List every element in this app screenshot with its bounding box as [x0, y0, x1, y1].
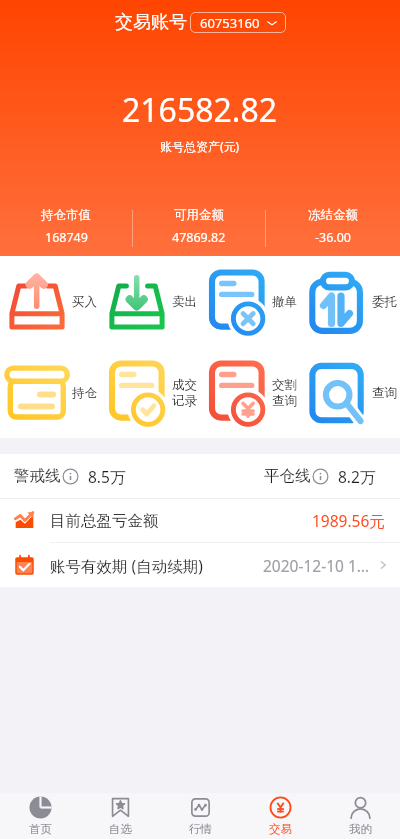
- staticText: 警戒线: [14, 466, 61, 486]
- button[interactable]: 卖出: [100, 256, 200, 347]
- button[interactable]: 账号有效期 (自动续期): [0, 543, 400, 587]
- button[interactable]: 行情: [160, 793, 240, 839]
- staticText: -36.00: [315, 229, 351, 246]
- staticText: 8.2万: [338, 466, 376, 487]
- button[interactable]: 成交 记录: [100, 347, 200, 438]
- button[interactable]: 警戒线: [14, 454, 200, 498]
- staticText: 首页: [29, 822, 52, 836]
- staticText: 冻结金额: [308, 207, 358, 223]
- staticText: 平仓线: [264, 466, 311, 486]
- staticText: 1989.56元: [312, 510, 385, 531]
- staticText: 216582.82: [122, 88, 278, 132]
- staticText: 交易: [269, 822, 292, 836]
- staticText: 自选: [109, 822, 132, 836]
- button[interactable]: 委托: [300, 256, 400, 347]
- button[interactable]: 我的: [320, 793, 400, 839]
- staticText: 可用金额: [174, 207, 224, 223]
- staticText: 账号总资产(元): [160, 138, 240, 154]
- staticText: 账号有效期 (自动续期): [50, 555, 203, 576]
- staticText: 交割 查询: [272, 377, 297, 408]
- staticText: 持仓市值: [41, 207, 91, 223]
- button[interactable]: 交割 查询: [200, 347, 300, 438]
- staticText: 成交 记录: [172, 377, 197, 408]
- staticText: 买入: [72, 294, 97, 310]
- button[interactable]: 平仓线: [200, 454, 400, 498]
- staticText: 撤单: [272, 294, 297, 310]
- staticText: 我的: [349, 822, 372, 836]
- button[interactable]: 首页: [0, 793, 80, 839]
- staticText: 8.5万: [88, 466, 126, 487]
- staticText: 47869.82: [172, 229, 226, 246]
- button[interactable]: 目前总盈亏金额: [0, 499, 400, 542]
- button[interactable]: 持仓: [0, 347, 100, 438]
- button[interactable]: 自选: [80, 793, 160, 839]
- staticText: 交易账号: [115, 11, 187, 34]
- staticText: 168749: [45, 229, 88, 246]
- staticText: 60753160: [200, 14, 260, 32]
- button[interactable]: 撤单: [200, 256, 300, 347]
- staticText: 卖出: [172, 294, 197, 310]
- staticText: 查询: [372, 385, 397, 401]
- staticText: 持仓: [72, 385, 97, 401]
- staticText: 委托: [372, 294, 397, 310]
- staticText: 目前总盈亏金额: [50, 511, 159, 531]
- staticText: 行情: [189, 822, 212, 836]
- staticText: 2020-12-10 1…: [263, 555, 370, 576]
- button[interactable]: 买入: [0, 256, 100, 347]
- button[interactable]: 60753160: [190, 12, 286, 33]
- button[interactable]: 交易: [240, 793, 320, 839]
- button[interactable]: 查询: [300, 347, 400, 438]
